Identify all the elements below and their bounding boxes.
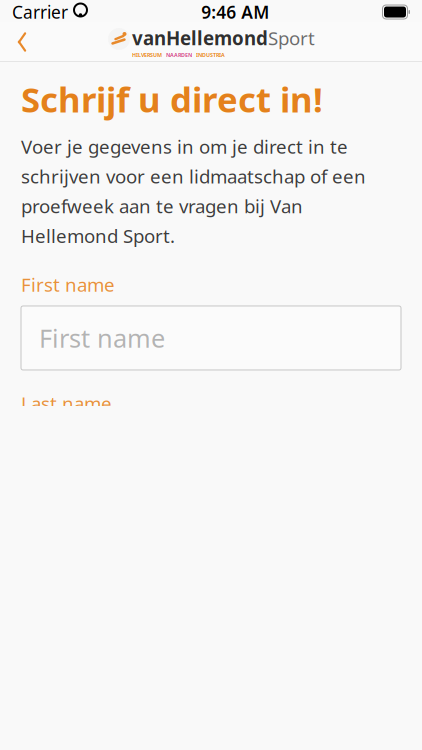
staticText: 9:46 AM [201, 0, 269, 23]
staticText: Last name [21, 391, 112, 416]
staticText: First name [21, 272, 115, 297]
staticText: NAARDEN [166, 51, 192, 58]
staticText: Hellemond [166, 26, 268, 50]
staticText: Schrijf u direct in! [21, 76, 323, 122]
staticText: Sport [268, 26, 315, 50]
staticText: INDUSTRIA [196, 51, 225, 58]
button[interactable]: Back [6, 24, 38, 60]
button[interactable]: First name [21, 306, 401, 370]
staticText: HILVERSUM [132, 51, 162, 58]
staticText: van [132, 26, 166, 50]
staticText: Voer je gegevens in om je direct in te s… [21, 134, 366, 248]
staticText: First name [39, 321, 165, 355]
staticText: Carrier [12, 0, 68, 23]
